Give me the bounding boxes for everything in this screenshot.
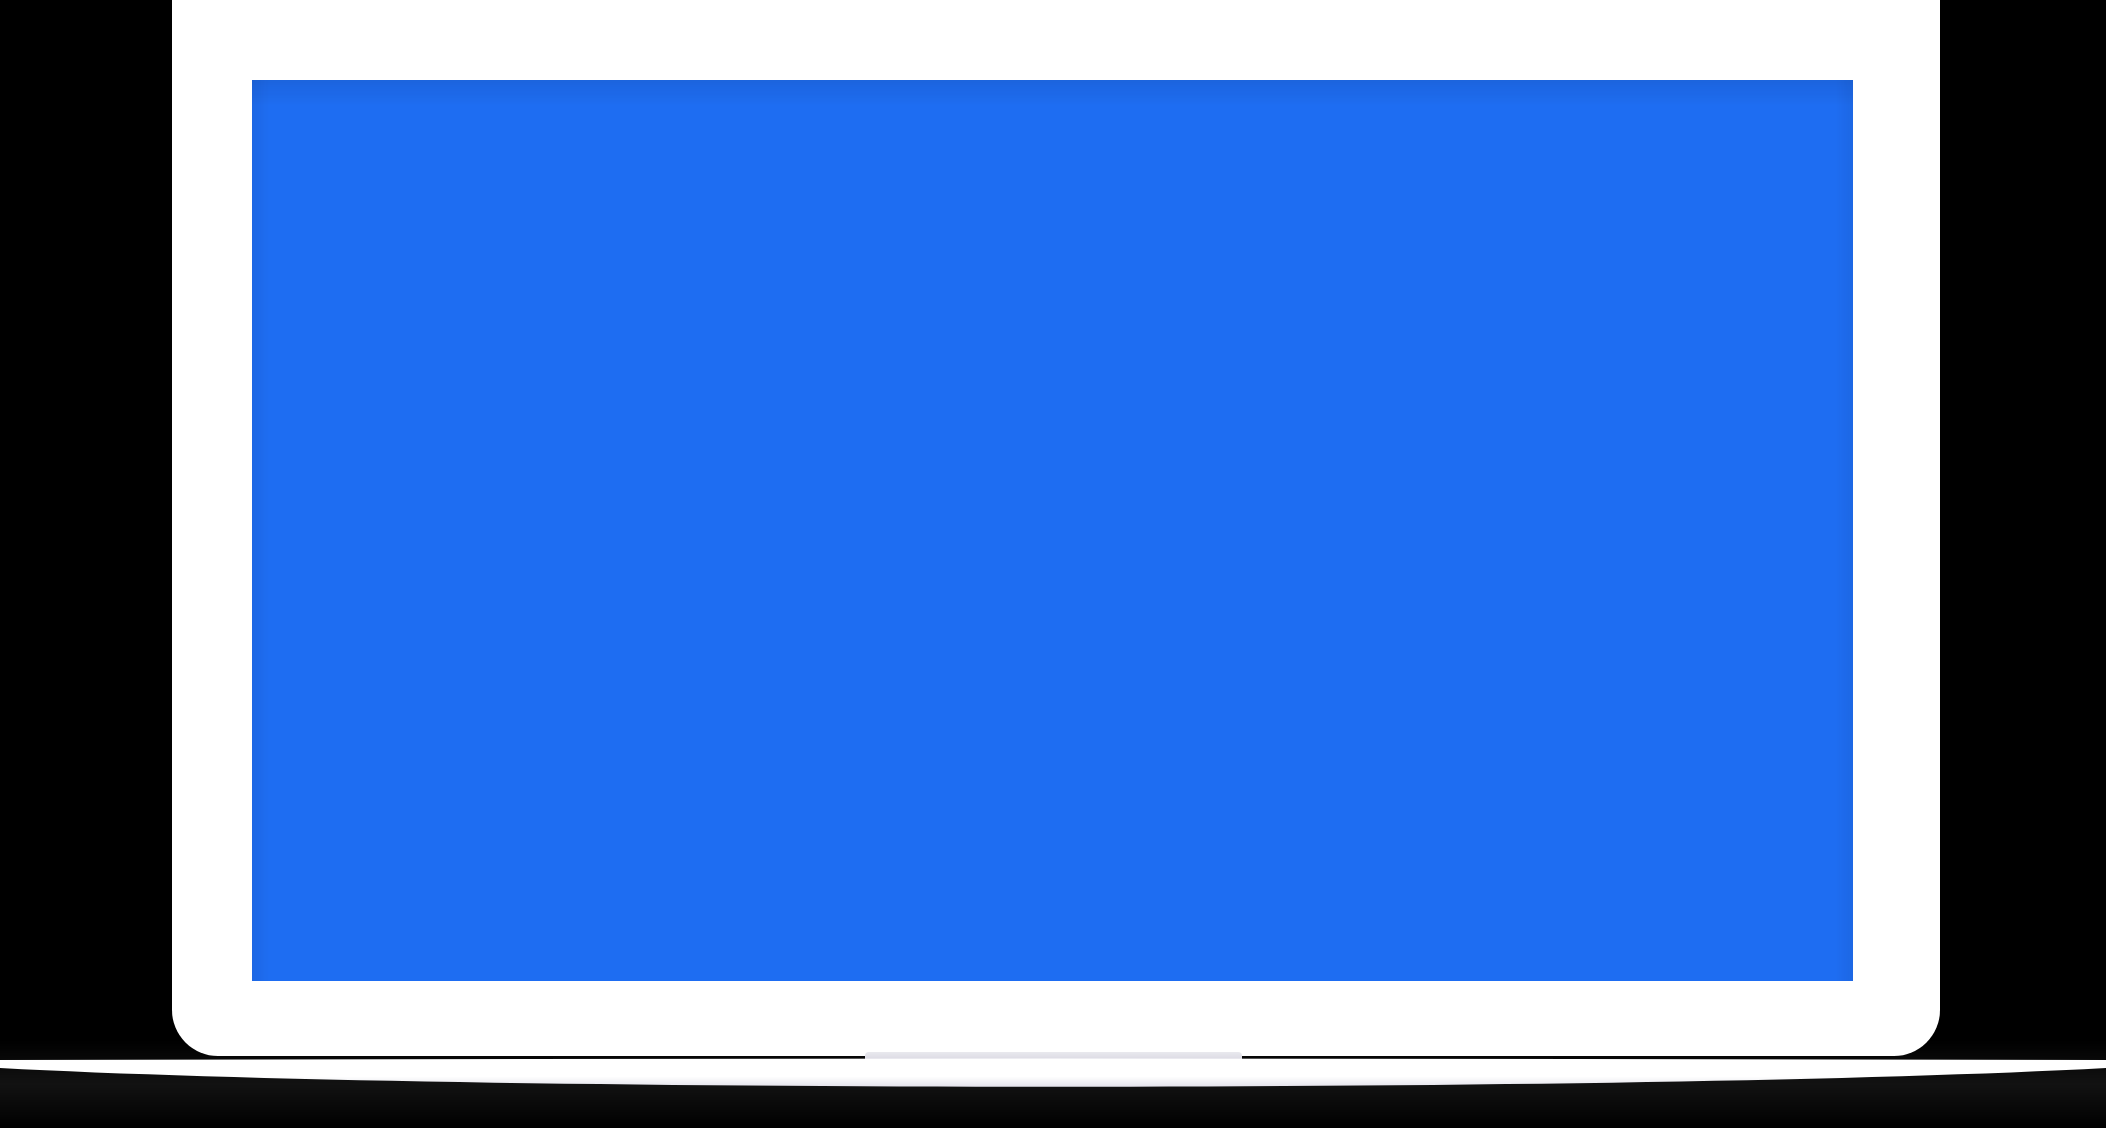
button[interactable]: Laptop device mockup with blue screen xyxy=(0,0,2106,1128)
